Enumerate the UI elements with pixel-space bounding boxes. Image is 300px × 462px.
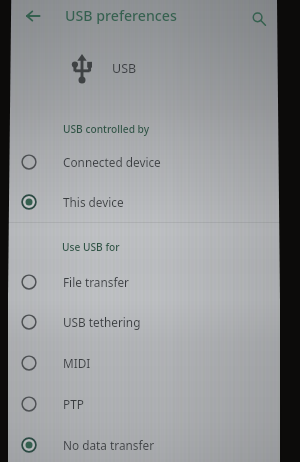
button[interactable]: MIDI bbox=[8, 343, 280, 383]
staticText: No data transfer bbox=[63, 437, 155, 453]
staticText: File transfer bbox=[63, 274, 129, 290]
button[interactable]: USB tethering bbox=[8, 302, 280, 342]
button[interactable]: No data transfer bbox=[8, 425, 280, 462]
staticText: This device bbox=[63, 194, 124, 210]
button[interactable]: Back bbox=[22, 5, 44, 27]
button[interactable]: Search bbox=[248, 8, 269, 29]
staticText: Use USB for bbox=[62, 240, 120, 254]
staticText: USB preferences bbox=[65, 6, 177, 25]
button[interactable]: Connected device bbox=[8, 142, 280, 182]
staticText: USB tethering bbox=[63, 314, 141, 330]
button[interactable]: PTP bbox=[8, 384, 280, 424]
staticText: PTP bbox=[63, 396, 84, 412]
staticText: Connected device bbox=[63, 154, 161, 170]
button[interactable]: File transfer bbox=[8, 262, 280, 302]
button[interactable] bbox=[8, 44, 280, 92]
staticText: MIDI bbox=[63, 355, 91, 371]
staticText: USB bbox=[112, 60, 137, 77]
staticText: USB controlled by bbox=[63, 122, 150, 136]
button[interactable]: This device bbox=[8, 182, 280, 222]
